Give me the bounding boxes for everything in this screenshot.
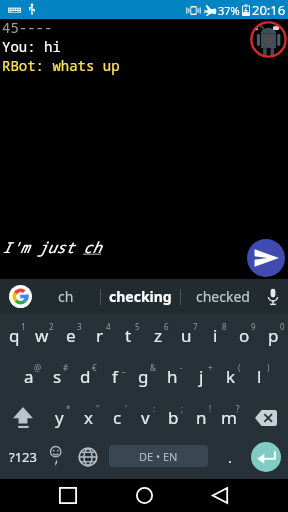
- staticText: q: [9, 324, 20, 347]
- button[interactable]: Back: [196, 479, 244, 512]
- staticText: d: [80, 365, 91, 388]
- button[interactable]: checked: [181, 279, 258, 314]
- staticText: .: [228, 447, 233, 467]
- button[interactable]: ch: [40, 279, 100, 314]
- staticText: *: [66, 403, 71, 414]
- staticText: o: [239, 324, 250, 347]
- button[interactable]: .: [209, 436, 243, 477]
- staticText: RBot: whats up: [2, 56, 120, 75]
- button[interactable]: j: [187, 356, 216, 397]
- staticText: 20:16: [252, 1, 286, 19]
- staticText: f: [112, 365, 118, 388]
- staticText: ): [267, 362, 270, 373]
- staticText: 7: [193, 321, 198, 332]
- staticText: p: [268, 324, 279, 347]
- staticText: j: [199, 365, 204, 388]
- button[interactable]: e: [56, 314, 85, 356]
- button[interactable]: a: [15, 356, 43, 397]
- button[interactable]: y: [45, 397, 74, 438]
- button[interactable]: Send: [247, 239, 285, 277]
- staticText: b: [168, 406, 179, 429]
- staticText: 0: [280, 321, 285, 332]
- staticText: -: [180, 362, 183, 373]
- button[interactable]: DE • EN: [109, 445, 208, 467]
- button[interactable]: p: [259, 314, 288, 356]
- staticText: @: [34, 362, 42, 373]
- staticText: 5: [135, 321, 140, 332]
- staticText: 4: [106, 321, 111, 332]
- button[interactable]: f: [100, 356, 129, 397]
- staticText: w: [35, 324, 49, 347]
- staticText: 45----: [2, 18, 53, 37]
- button[interactable]: m: [215, 397, 243, 438]
- button[interactable]: l: [245, 356, 274, 397]
- button[interactable]: s: [43, 356, 71, 397]
- staticText: l: [257, 365, 262, 388]
- staticText: 8: [222, 321, 227, 332]
- staticText: y: [55, 406, 64, 429]
- button[interactable]: h: [158, 356, 187, 397]
- button[interactable]: w: [28, 314, 56, 356]
- staticText: DE • EN: [139, 449, 178, 464]
- staticText: 3: [77, 321, 82, 332]
- button[interactable]: checking: [101, 279, 180, 314]
- button[interactable]: g: [129, 356, 158, 397]
- button[interactable]: o: [230, 314, 259, 356]
- staticText: checked: [196, 287, 250, 306]
- button[interactable]: i: [201, 314, 230, 356]
- staticText: r: [96, 324, 104, 347]
- button[interactable]: u: [172, 314, 201, 356]
- staticText: e: [66, 324, 76, 347]
- staticText: 9: [251, 321, 256, 332]
- button[interactable]: z: [143, 314, 172, 356]
- staticText: h: [167, 365, 178, 388]
- button[interactable]: Change language: [67, 436, 108, 477]
- staticText: v: [141, 406, 150, 429]
- staticText: s: [53, 365, 62, 388]
- button[interactable]: d: [71, 356, 100, 397]
- button[interactable]: t: [114, 314, 143, 356]
- staticText: k: [226, 365, 236, 388]
- staticText: 6: [164, 321, 169, 332]
- button[interactable]: Emoji: [45, 436, 67, 477]
- button[interactable]: Shift: [0, 397, 45, 438]
- staticText: 37%: [218, 3, 240, 18]
- staticText: ': [125, 403, 127, 414]
- staticText: 2: [49, 321, 54, 332]
- staticText: ch: [58, 287, 74, 306]
- staticText: u: [181, 324, 192, 347]
- staticText: (: [238, 362, 241, 373]
- button[interactable]: q: [0, 314, 28, 356]
- staticText: #: [63, 362, 69, 373]
- staticText: t: [125, 324, 132, 347]
- button[interactable]: Enter: [243, 436, 288, 477]
- button[interactable]: r: [85, 314, 114, 356]
- staticText: m: [221, 406, 237, 429]
- button[interactable]: n: [187, 397, 215, 438]
- staticText: I'm just ch: [2, 237, 102, 257]
- button[interactable]: ?123: [0, 436, 45, 477]
- button[interactable]: c: [103, 397, 131, 438]
- staticText: !: [209, 403, 212, 414]
- staticText: ": [96, 403, 100, 414]
- button[interactable]: Recents: [44, 479, 92, 512]
- staticText: €: [92, 362, 97, 373]
- button[interactable]: Backspace: [243, 397, 288, 438]
- button[interactable]: x: [74, 397, 103, 438]
- button[interactable]: Bot avatar: [250, 21, 287, 58]
- button[interactable]: k: [216, 356, 245, 397]
- staticText: x: [84, 406, 93, 429]
- button[interactable]: Voice input: [258, 279, 288, 314]
- staticText: n: [196, 406, 207, 429]
- staticText: a: [24, 365, 34, 388]
- button[interactable]: Google: [0, 279, 40, 314]
- button[interactable]: b: [159, 397, 187, 438]
- staticText: g: [138, 365, 149, 388]
- staticText: ;: [181, 403, 184, 414]
- staticText: 1: [21, 321, 26, 332]
- staticText: c: [113, 406, 122, 429]
- button[interactable]: Home: [120, 479, 168, 512]
- button[interactable]: v: [131, 397, 159, 438]
- staticText: :: [153, 403, 156, 414]
- staticText: checking: [109, 287, 172, 306]
